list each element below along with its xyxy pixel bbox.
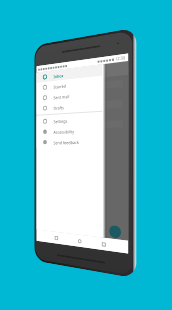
staticText: Drafts <box>53 104 64 111</box>
staticText: Settings <box>53 118 68 124</box>
button[interactable]: Send feedback <box>37 135 102 147</box>
button[interactable]: Inbox <box>37 64 102 83</box>
staticText: Send feedback <box>53 139 79 145</box>
button[interactable]: Recents <box>101 242 106 247</box>
button[interactable]: Back <box>54 235 58 241</box>
staticText: 12:30 <box>115 55 126 62</box>
button[interactable]: Drafts <box>37 98 102 114</box>
button[interactable]: Starred <box>37 76 102 93</box>
staticText: Sent mail <box>53 93 70 100</box>
button[interactable]: Accessibility <box>37 124 102 137</box>
button[interactable]: Home <box>77 238 82 244</box>
staticText: Inbox <box>53 72 64 79</box>
button[interactable]: Settings <box>37 113 102 127</box>
staticText: Starred <box>53 83 66 90</box>
staticText: Accessibility <box>53 128 75 135</box>
button[interactable]: Sent mail <box>37 87 102 104</box>
button[interactable]: Compose <box>109 225 121 239</box>
